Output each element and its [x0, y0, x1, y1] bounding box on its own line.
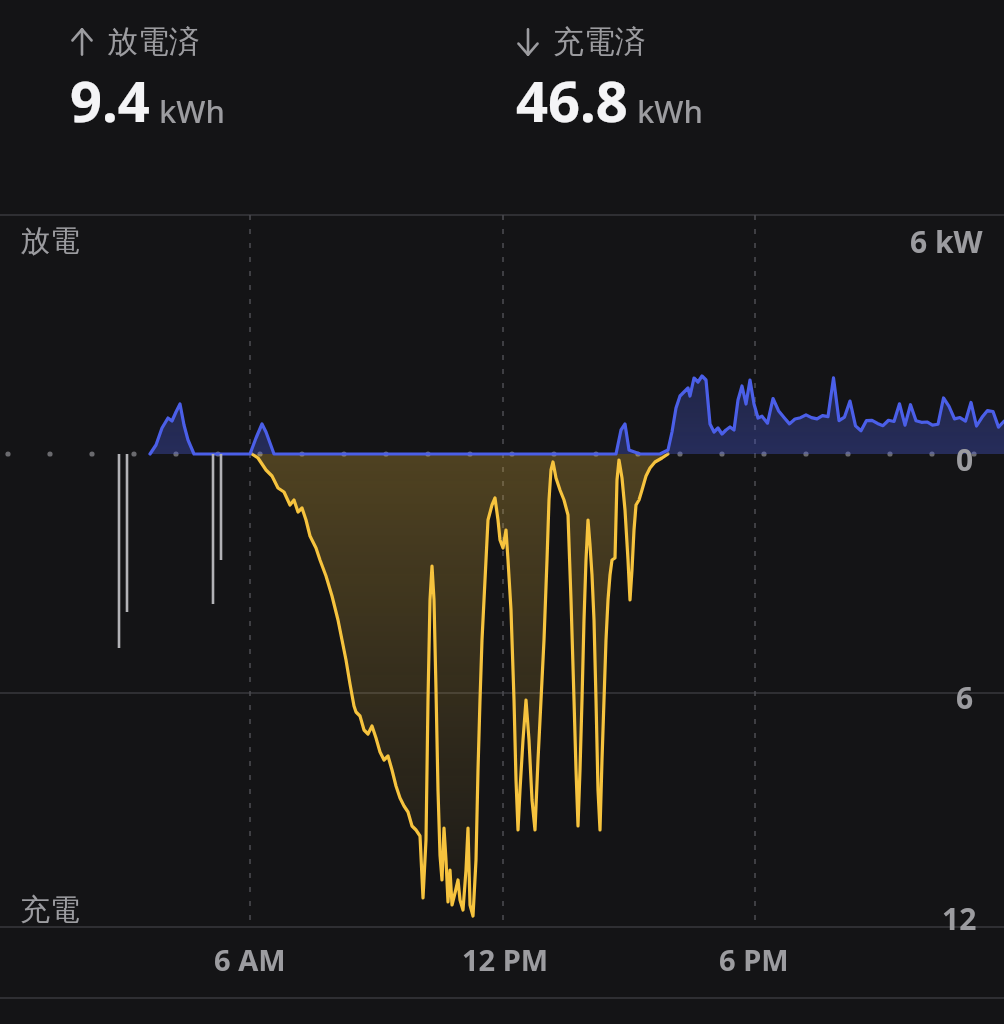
button[interactable]: Charged — [516, 22, 703, 138]
staticText: 9.4 — [70, 62, 150, 138]
staticText: kWh — [637, 90, 703, 132]
other: Discharged — [70, 25, 94, 59]
staticText: 放電 — [20, 222, 80, 260]
staticText: 放電済 — [107, 22, 200, 61]
staticText: 12 — [942, 898, 977, 939]
staticText: 46.8 — [516, 62, 628, 138]
button[interactable]: Discharged — [70, 22, 225, 138]
staticText: 充電済 — [553, 22, 646, 61]
staticText: 6 PM — [719, 940, 789, 979]
staticText: 12 PM — [462, 940, 549, 979]
staticText: kWh — [159, 90, 225, 132]
staticText: 6 kW — [910, 221, 983, 262]
staticText: 0 — [956, 439, 974, 480]
staticText: 6 AM — [214, 940, 286, 979]
staticText: 6 — [956, 677, 974, 718]
staticText: 充電 — [20, 891, 80, 929]
other: Charged — [516, 25, 540, 59]
